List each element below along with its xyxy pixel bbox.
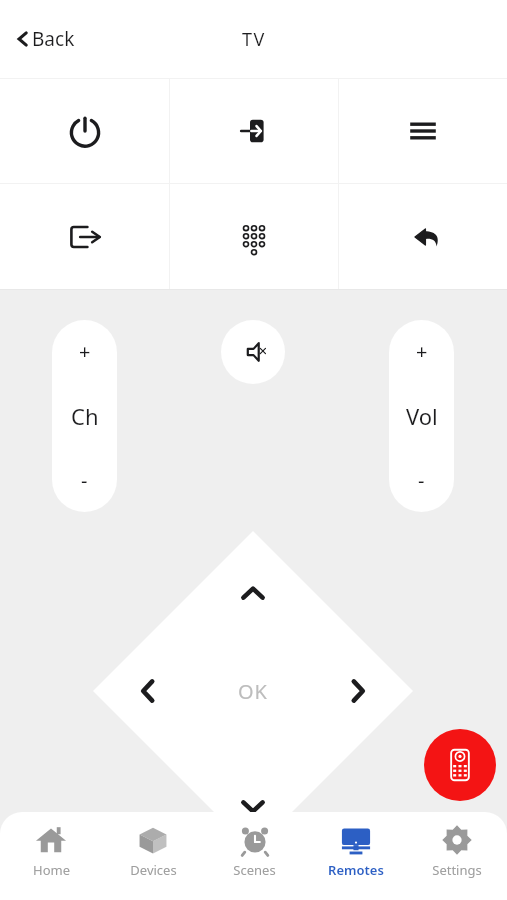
button[interactable]: Power	[0, 78, 169, 183]
staticText: -	[81, 467, 88, 494]
button[interactable]: Left	[125, 668, 171, 714]
staticText: Vol	[406, 401, 438, 431]
staticText: Settings	[432, 861, 482, 879]
button[interactable]: Exit	[0, 184, 169, 290]
staticText: Home	[33, 861, 70, 879]
staticText: OK	[238, 678, 268, 705]
staticText: TV	[242, 27, 266, 52]
staticText: Ch	[71, 401, 99, 431]
button[interactable]: Back	[10, 20, 79, 58]
staticText: -	[418, 467, 425, 494]
button[interactable]: +	[52, 320, 117, 512]
button[interactable]: Keypad	[170, 184, 338, 290]
button[interactable]: Return	[339, 184, 507, 290]
staticText: Devices	[130, 861, 177, 879]
staticText: Remotes	[328, 861, 384, 879]
button[interactable]: Up	[230, 571, 276, 617]
button[interactable]: Mute	[221, 320, 285, 384]
button[interactable]: Right	[335, 668, 381, 714]
button[interactable]: +	[389, 320, 454, 512]
button[interactable]: Home	[0, 824, 102, 900]
staticText: Back	[32, 26, 75, 52]
button[interactable]: Scenes	[204, 824, 305, 900]
button[interactable]: OK	[215, 653, 291, 729]
button[interactable]: Input	[170, 78, 338, 183]
button[interactable]: Menu	[339, 78, 507, 183]
staticText: +	[79, 338, 91, 365]
button[interactable]: Remotes	[305, 824, 406, 900]
button[interactable]: Down	[230, 783, 276, 829]
button[interactable]: Settings	[406, 824, 507, 900]
button[interactable]: Devices	[102, 824, 204, 900]
staticText: +	[416, 338, 428, 365]
staticText: Scenes	[233, 861, 276, 879]
button[interactable]: Open remote	[424, 729, 496, 801]
